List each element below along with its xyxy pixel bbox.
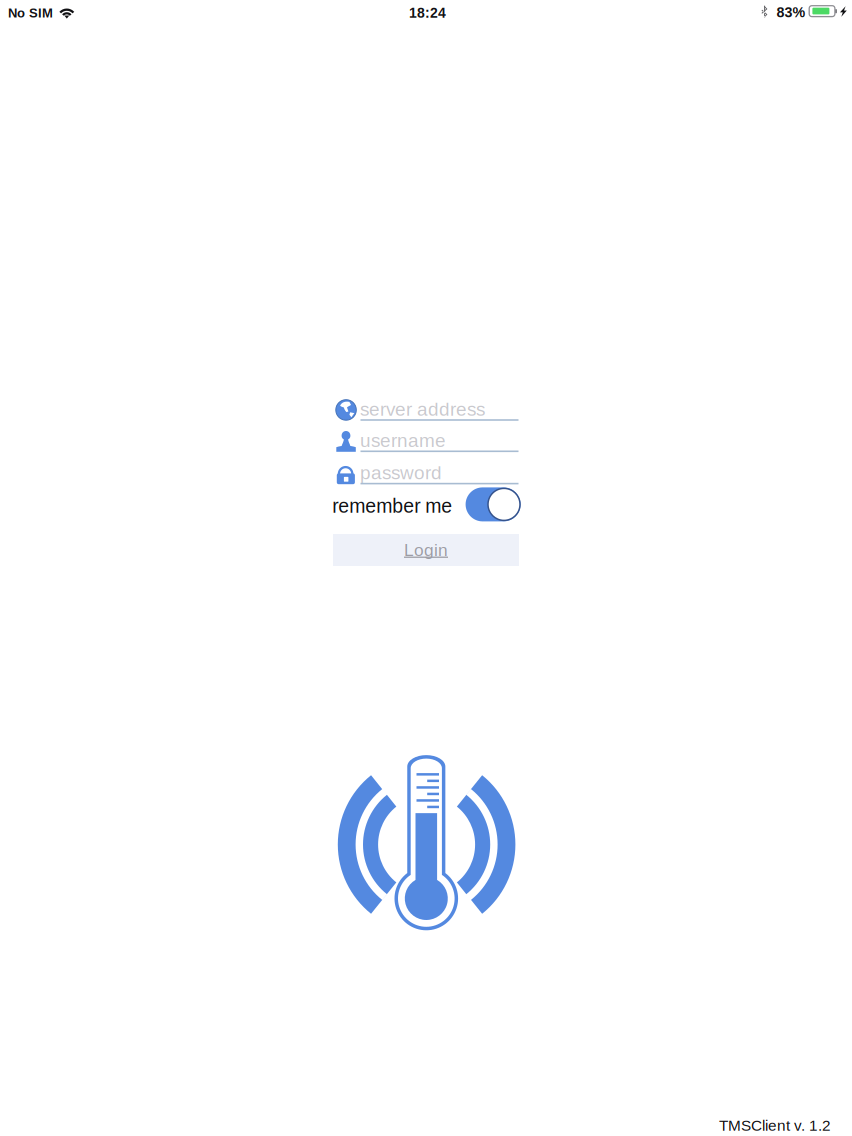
staticText: TMSClient v. 1.2 — [719, 1117, 831, 1134]
staticText: No SIM — [8, 6, 53, 20]
staticText: server address — [360, 399, 485, 420]
button[interactable]: Login — [333, 534, 519, 566]
button[interactable]: username — [333, 423, 519, 454]
button[interactable]: Remember me — [466, 487, 521, 521]
staticText: 83% — [776, 4, 805, 20]
staticText: Login — [404, 540, 448, 560]
staticText: 18:24 — [409, 5, 446, 21]
staticText: username — [360, 430, 446, 451]
button[interactable]: password — [333, 456, 519, 487]
button[interactable]: server address — [333, 392, 519, 423]
staticText: remember me — [332, 495, 452, 517]
staticText: password — [360, 462, 442, 483]
